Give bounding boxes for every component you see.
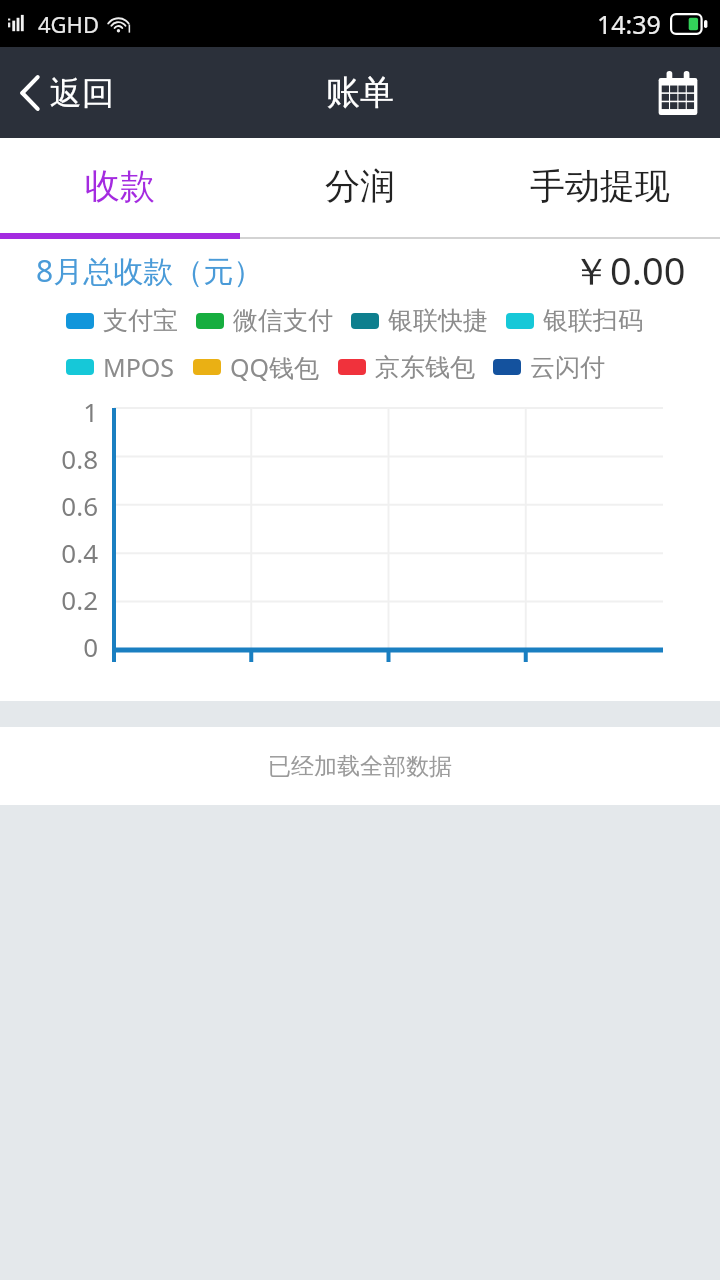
- staticText: 0.6: [61, 488, 98, 523]
- staticText: 账单: [326, 71, 394, 114]
- staticText: 0: [83, 629, 98, 664]
- staticText: 收款: [85, 164, 155, 208]
- staticText: 0.8: [61, 441, 98, 476]
- button[interactable]: 手动提现: [480, 138, 720, 233]
- button[interactable]: 分润: [240, 138, 480, 233]
- staticText: 0.2: [61, 582, 98, 617]
- staticText: 银联快捷: [388, 305, 488, 336]
- staticText: 14:39: [597, 7, 661, 41]
- staticText: QQ钱包: [230, 350, 320, 384]
- button[interactable]: 收款: [0, 138, 240, 233]
- button[interactable]: Calendar: [636, 51, 720, 135]
- staticText: 手动提现: [530, 164, 670, 208]
- staticText: 返回: [50, 73, 114, 113]
- button[interactable]: 返回: [0, 63, 132, 123]
- staticText: ￥0.00: [572, 244, 686, 296]
- staticText: 0.4: [61, 535, 98, 570]
- staticText: 支付宝: [103, 305, 178, 336]
- staticText: 1: [83, 394, 98, 429]
- staticText: 京东钱包: [375, 352, 475, 383]
- staticText: MPOS: [103, 350, 175, 384]
- staticText: 4GHD: [38, 9, 99, 39]
- staticText: 云闪付: [530, 352, 605, 383]
- staticText: 微信支付: [233, 305, 333, 336]
- staticText: 8月总收款（元）: [36, 250, 264, 291]
- staticText: 已经加载全部数据: [268, 752, 452, 781]
- staticText: 分润: [325, 164, 395, 208]
- staticText: 银联扫码: [543, 305, 643, 336]
